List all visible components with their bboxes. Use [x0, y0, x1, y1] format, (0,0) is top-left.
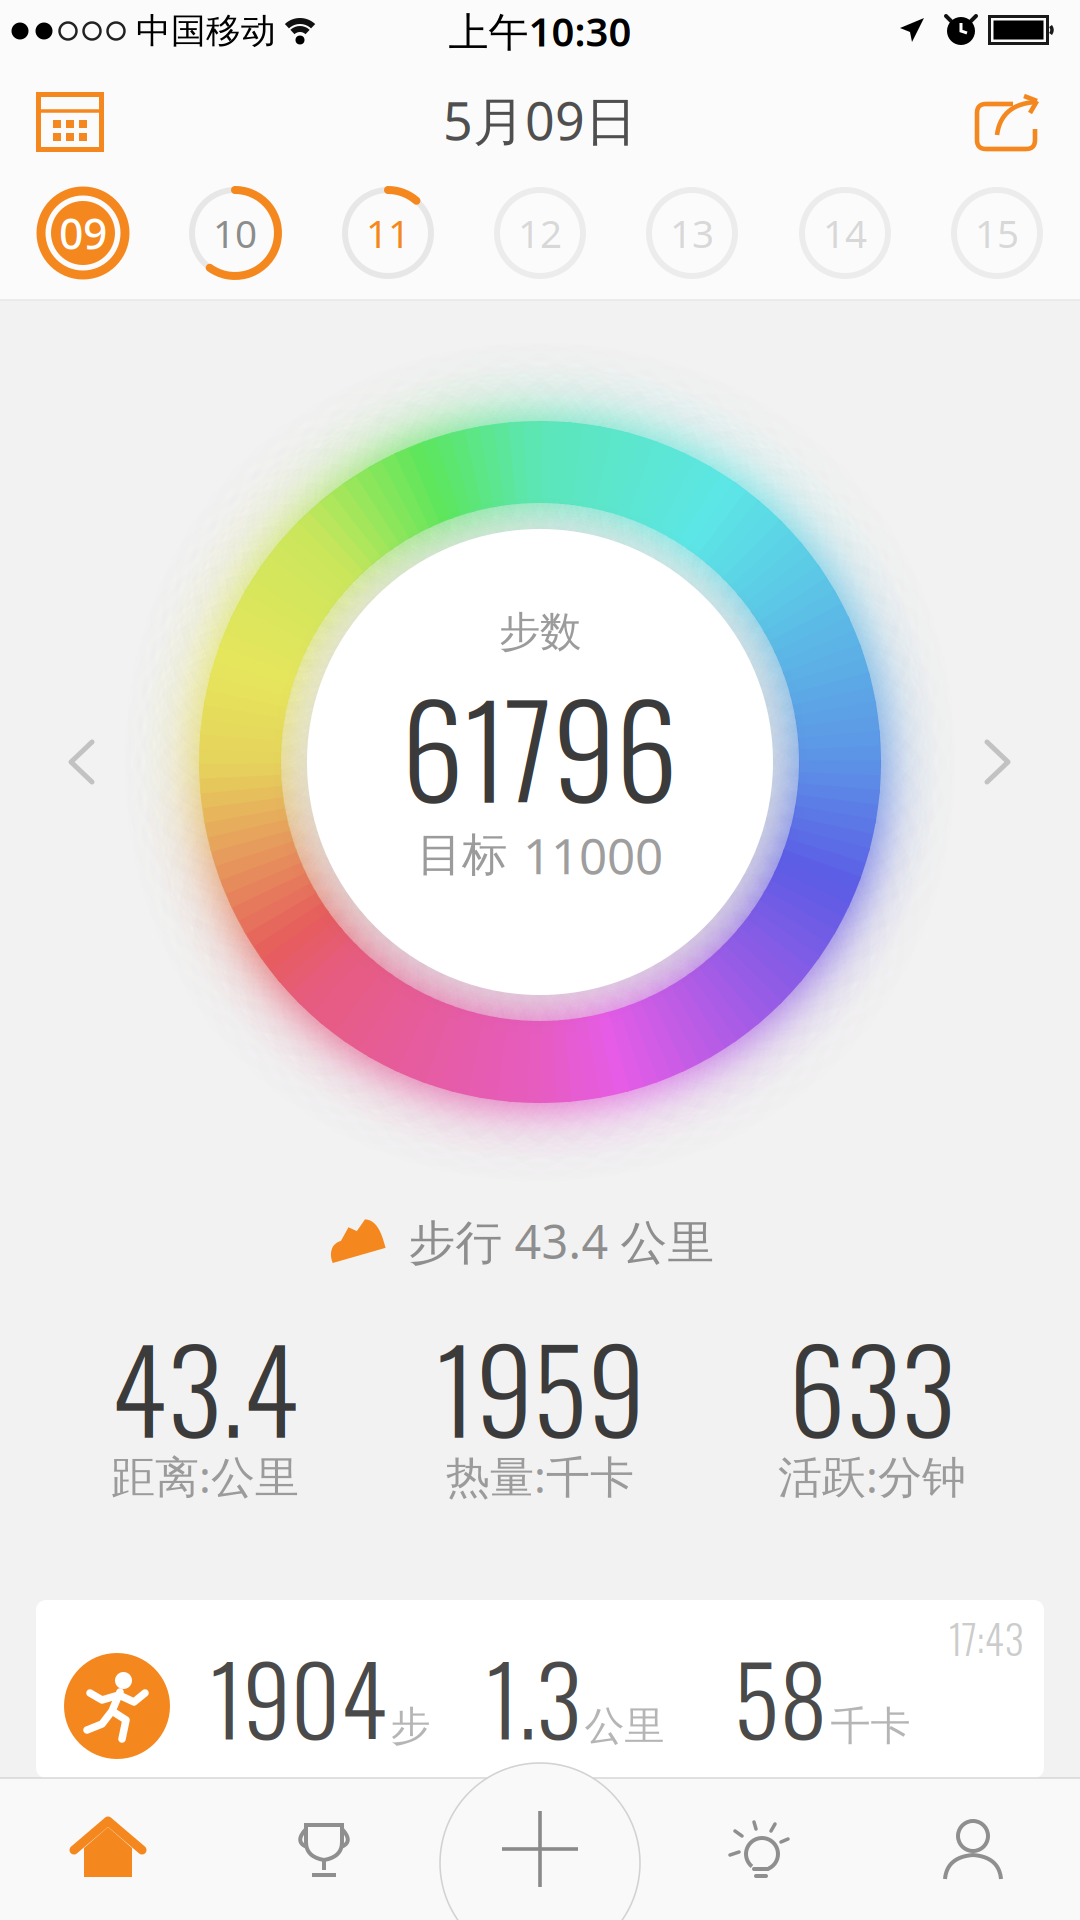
staticText: 千卡: [830, 1701, 910, 1751]
staticText: 中国移动: [136, 10, 276, 52]
staticText: 活跃:分钟: [778, 1447, 966, 1505]
staticText: 距离:公里: [111, 1447, 299, 1505]
button[interactable]: 10: [187, 185, 283, 281]
staticText: 步行 43.4 公里: [408, 1210, 714, 1272]
button[interactable]: 分享: [973, 93, 1041, 153]
button[interactable]: 日历: [36, 92, 104, 152]
staticText: 步数: [499, 607, 581, 657]
button[interactable]: 14: [797, 185, 893, 281]
staticText: 公里: [584, 1701, 664, 1751]
staticText: 43.4: [111, 1301, 299, 1471]
staticText: 1.3: [485, 1625, 581, 1767]
staticText: 步: [390, 1701, 430, 1751]
staticText: 1959: [435, 1301, 644, 1471]
button[interactable]: 发现: [724, 1820, 790, 1880]
staticText: 09: [59, 205, 107, 261]
staticText: 热量:千卡: [446, 1447, 634, 1505]
staticText: 14: [823, 207, 867, 259]
button[interactable]: 11: [340, 185, 436, 281]
staticText: 17:43: [948, 1608, 1023, 1668]
staticText: 633: [788, 1301, 955, 1471]
button[interactable]: 成就: [292, 1820, 356, 1880]
button[interactable]: 添加: [502, 1811, 578, 1887]
button[interactable]: 我的: [941, 1819, 1005, 1881]
button[interactable]: 17:43: [36, 1600, 1044, 1778]
staticText: 上午10:30: [448, 4, 631, 57]
button[interactable]: 12: [492, 185, 588, 281]
button[interactable]: 15: [949, 185, 1045, 281]
staticText: 11: [366, 207, 410, 259]
staticText: 5月09日: [443, 85, 637, 155]
staticText: 13: [670, 207, 714, 259]
staticText: 58: [733, 1625, 827, 1767]
staticText: 15: [975, 207, 1019, 259]
button[interactable]: 前一天: [50, 724, 114, 800]
staticText: 目标: [417, 827, 507, 883]
staticText: 10: [213, 207, 257, 259]
button[interactable]: 后一天: [966, 724, 1030, 800]
staticText: 1904: [209, 1625, 387, 1767]
staticText: 11000: [523, 822, 663, 888]
button[interactable]: 13: [644, 185, 740, 281]
staticText: 61796: [401, 653, 678, 839]
button[interactable]: 首页: [71, 1817, 145, 1881]
button[interactable]: 09: [35, 185, 131, 281]
staticText: 12: [518, 207, 562, 259]
